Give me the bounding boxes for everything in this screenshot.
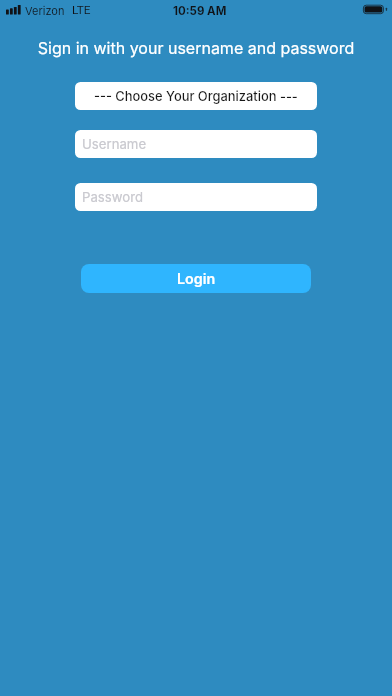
staticText: LTE — [72, 3, 91, 17]
button[interactable]: Username — [75, 130, 317, 158]
staticText: 10:59 AM — [173, 4, 227, 18]
staticText: Login — [177, 270, 216, 287]
staticText: Password — [82, 189, 144, 205]
staticText: Sign in with your username and password — [0, 38, 392, 57]
staticText: Username — [82, 136, 147, 152]
button[interactable]: Choose Your Organization — [75, 82, 317, 110]
staticText: --- Choose Your Organization --- — [94, 89, 298, 105]
button[interactable]: Login — [81, 264, 311, 293]
staticText: Verizon — [25, 4, 65, 17]
button[interactable]: Password — [75, 183, 317, 211]
